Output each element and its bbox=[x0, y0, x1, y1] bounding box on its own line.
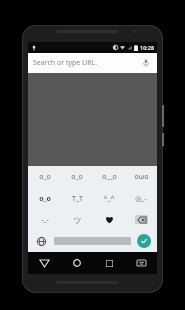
staticText: -_- bbox=[41, 215, 49, 225]
staticText: Search or type URL. bbox=[33, 58, 140, 68]
staticText: ^_^ bbox=[103, 194, 115, 204]
staticText: ツ bbox=[73, 215, 82, 225]
button[interactable]: ◎_- bbox=[125, 188, 157, 209]
button[interactable]: Recent apps bbox=[93, 252, 125, 274]
button[interactable]: ツ bbox=[61, 209, 93, 230]
button[interactable]: ^_^ bbox=[93, 188, 125, 209]
button[interactable]: Back bbox=[28, 252, 61, 274]
button[interactable]: o_o bbox=[61, 166, 93, 188]
button[interactable]: Change keyboard bbox=[125, 252, 157, 274]
button[interactable]: Voice search bbox=[140, 57, 152, 69]
button[interactable]: Switch language bbox=[28, 230, 54, 252]
staticText: o_o bbox=[71, 172, 83, 182]
other: Backspace bbox=[135, 215, 148, 224]
staticText: 10:28 bbox=[140, 44, 155, 51]
staticText: ◎_- bbox=[135, 194, 147, 204]
button[interactable]: T_T bbox=[61, 188, 93, 209]
button[interactable]: Done bbox=[137, 234, 151, 248]
staticText: o_o bbox=[39, 172, 51, 182]
button[interactable]: o__o bbox=[93, 166, 125, 188]
staticText: T_T bbox=[72, 194, 83, 204]
button[interactable]: Home bbox=[61, 252, 93, 274]
staticText: o__o bbox=[102, 172, 117, 182]
button[interactable]: o_o bbox=[28, 188, 61, 209]
button[interactable]: Search or type URL. bbox=[28, 53, 157, 73]
button[interactable]: -_- bbox=[28, 209, 61, 230]
button[interactable]: oωo bbox=[125, 166, 157, 188]
button[interactable] bbox=[93, 209, 125, 230]
button[interactable]: o_o bbox=[28, 166, 61, 188]
staticText: o_o bbox=[39, 194, 51, 204]
staticText: oωo bbox=[134, 172, 149, 182]
button[interactable]: Backspace bbox=[125, 209, 157, 230]
